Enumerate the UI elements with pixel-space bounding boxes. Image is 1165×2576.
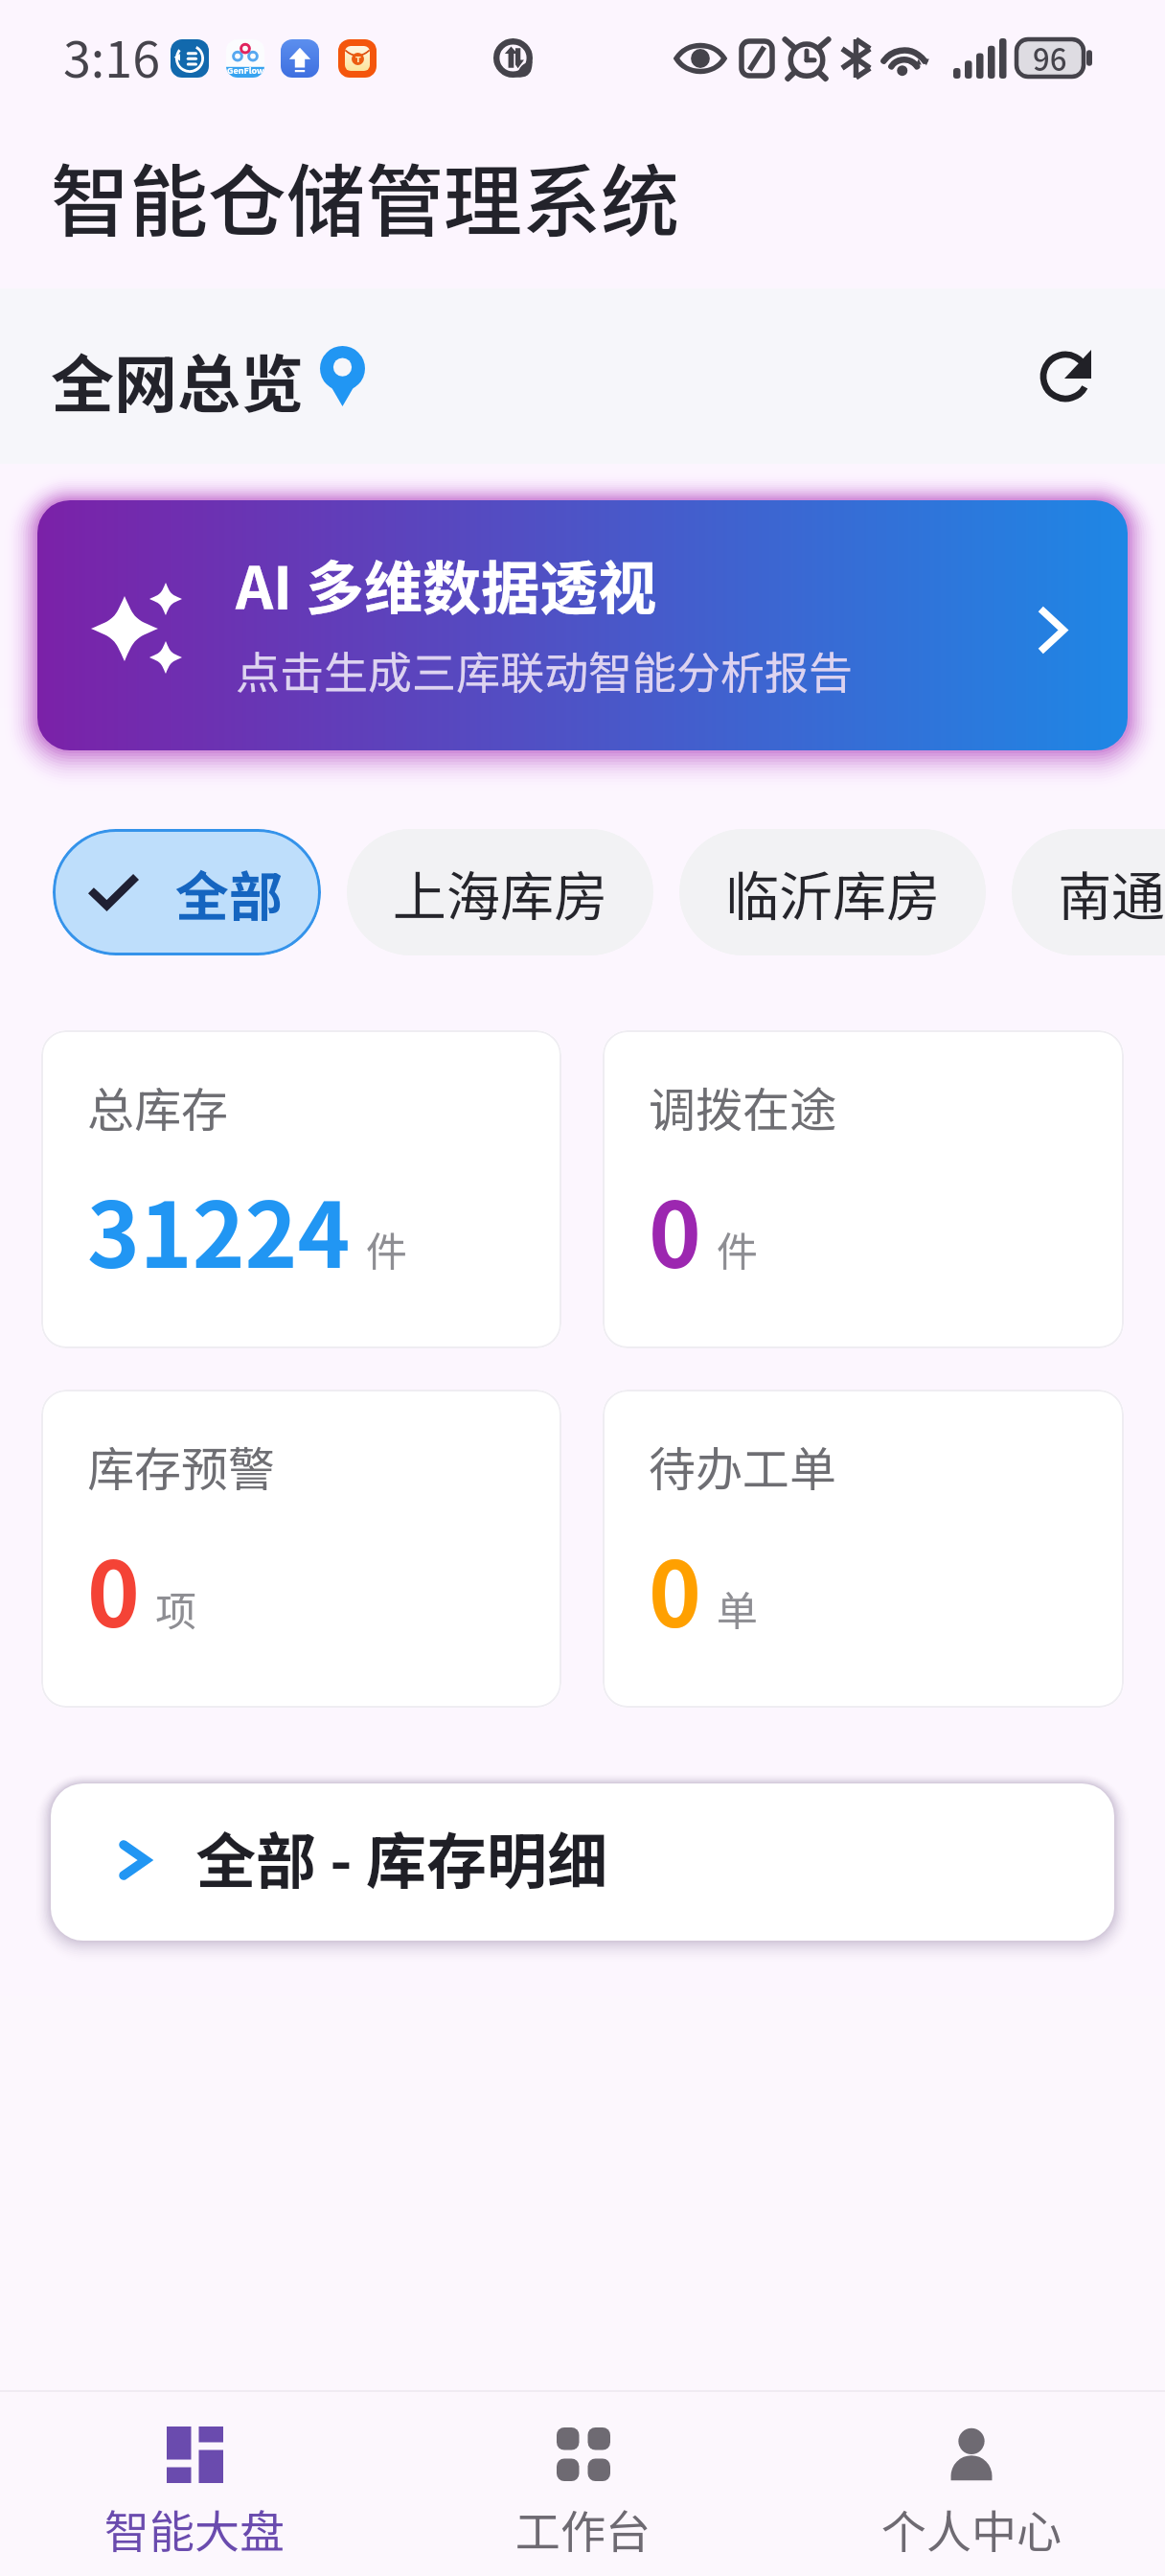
staticText: 0 [87, 1524, 140, 1653]
staticText: 件 [366, 1219, 407, 1278]
staticText: 南通库房 [1058, 854, 1165, 931]
staticText: 全部 [175, 854, 283, 931]
staticText: 个人中心 [881, 2495, 1062, 2561]
button[interactable]: 南通库房 [1012, 829, 1165, 955]
staticText: 件 [717, 1219, 758, 1278]
staticText: T [355, 53, 361, 65]
staticText: 3:16 [63, 20, 161, 92]
staticText: 库存预警 [87, 1432, 276, 1500]
staticText: 临沂库房 [725, 854, 940, 931]
staticText: 0 [649, 1524, 701, 1653]
button[interactable]: AI 多维数据透视 [37, 500, 1128, 750]
staticText: 全部 - 库存明细 [195, 1813, 607, 1900]
button[interactable]: 上海库房 [347, 829, 653, 955]
button[interactable]: 全部 - 库存明细 [51, 1783, 1114, 1941]
staticText: 点击生成三库联动智能分析报告 [236, 638, 853, 702]
button[interactable]: 智能大盘 [0, 2392, 389, 2576]
staticText: AI 多维数据透视 [236, 541, 657, 626]
staticText: 调拨在途 [649, 1072, 837, 1140]
button[interactable]: 个人中心 [777, 2392, 1165, 2576]
staticText: 智能大盘 [104, 2495, 285, 2561]
staticText: GenFlow [227, 64, 264, 77]
button[interactable]: Refresh [1035, 346, 1096, 407]
button[interactable]: 全部 [53, 829, 321, 955]
button[interactable]: 临沂库房 [679, 829, 986, 955]
staticText: 96 [1033, 36, 1067, 78]
staticText: 工作台 [515, 2495, 651, 2561]
staticText: 总库存 [87, 1072, 229, 1140]
staticText: 上海库房 [393, 854, 607, 931]
staticText: 单 [717, 1578, 758, 1638]
button[interactable]: 工作台 [389, 2392, 777, 2576]
button[interactable]: 总库存 [41, 1030, 561, 1348]
staticText: 项 [155, 1578, 196, 1638]
button[interactable]: 调拨在途 [603, 1030, 1124, 1348]
staticText: 智能仓储管理系统 [51, 139, 680, 253]
staticText: 待办工单 [649, 1432, 837, 1500]
button[interactable]: 库存预警 [41, 1390, 561, 1708]
staticText: 全网总览 [51, 333, 304, 425]
staticText: 0 [649, 1164, 701, 1294]
staticText: 31224 [87, 1164, 351, 1294]
button[interactable]: 待办工单 [603, 1390, 1124, 1708]
